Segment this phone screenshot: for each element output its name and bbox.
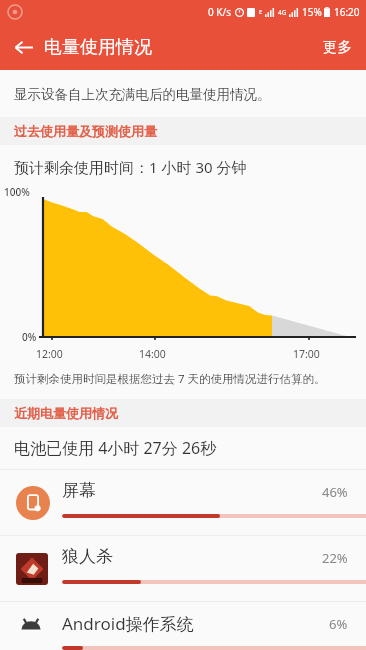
button[interactable]: 狼人杀	[0, 536, 366, 601]
staticText: 预计剩余使用时间是根据您过去 7 天的使用情况进行估算的。	[14, 371, 326, 387]
staticText: 0 K/s	[208, 5, 232, 19]
staticText: 预计剩余使用时间：1 小时 30 分钟	[14, 157, 247, 177]
staticText: 22%	[322, 549, 348, 567]
staticText: 狼人杀	[62, 546, 113, 567]
staticText: 100%	[4, 185, 30, 199]
staticText: 4G	[278, 8, 287, 17]
staticText: 近期电量使用情况	[14, 405, 118, 421]
staticText: 14:00	[139, 347, 166, 361]
staticText: 12:00	[36, 347, 63, 361]
staticText: 显示设备自上次充满电后的电量使用情况。	[14, 86, 271, 103]
staticText: 0%	[22, 330, 37, 344]
staticText: 电池已使用 4小时 27分 26秒	[14, 437, 217, 459]
button[interactable]: Android操作系统	[0, 602, 366, 650]
staticText: 46%	[322, 483, 348, 501]
button[interactable]: Back	[6, 30, 40, 64]
staticText: E	[259, 8, 263, 16]
staticText: 16:20	[334, 5, 360, 19]
staticText: 电量使用情况	[44, 36, 152, 59]
staticText: 17:00	[293, 347, 320, 361]
button[interactable]: 更多	[309, 28, 366, 66]
staticText: 15%	[302, 5, 322, 19]
staticText: Android操作系统	[62, 612, 194, 635]
staticText: 6%	[329, 615, 348, 633]
staticText: 更多	[323, 38, 352, 56]
button[interactable]: 屏幕	[0, 470, 366, 535]
staticText: 屏幕	[62, 480, 96, 501]
staticText: 过去使用量及预测使用量	[14, 123, 157, 139]
